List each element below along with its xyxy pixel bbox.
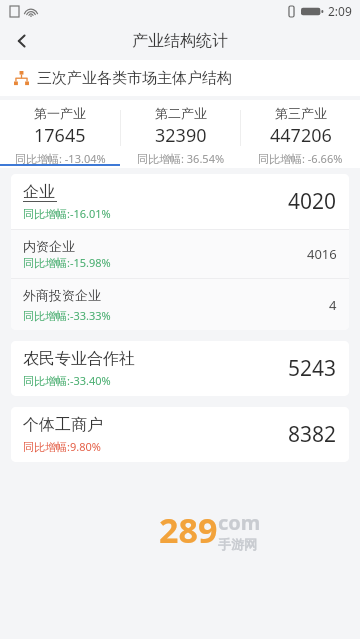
button[interactable]: Back (0, 22, 44, 60)
button[interactable]: 第三产业 (241, 100, 360, 166)
staticText: 4 (329, 296, 337, 314)
staticText: 5243 (288, 354, 337, 383)
staticText: 同比增幅:9.80% (23, 439, 101, 454)
staticText: 17645 (34, 123, 86, 148)
staticText: 4016 (307, 245, 337, 263)
button[interactable]: 个体工商户 (11, 407, 349, 462)
staticText: 32390 (155, 123, 207, 148)
staticText: com (218, 509, 261, 536)
staticText: 同比增幅:-16.01% (23, 206, 111, 221)
staticText: 第三产业 (275, 105, 327, 121)
staticText: 同比增幅: -6.66% (258, 151, 343, 166)
staticText: 内资企业 (23, 238, 75, 254)
staticText: 个体工商户 (23, 415, 103, 435)
button[interactable]: 第一产业 (0, 100, 120, 166)
staticText: 第二产业 (155, 105, 207, 121)
staticText: 447206 (270, 123, 332, 148)
staticText: 农民专业合作社 (23, 349, 135, 369)
staticText: 手游网 (218, 536, 257, 552)
button[interactable]: 农民专业合作社 (11, 341, 349, 396)
staticText: 同比增幅: 36.54% (137, 151, 225, 166)
button[interactable]: 内资企业 (11, 230, 349, 278)
staticText: 2:09 (328, 3, 352, 19)
staticText: 同比增幅:-15.98% (23, 255, 111, 270)
staticText: 同比增幅:-33.40% (23, 373, 111, 388)
staticText: 同比增幅:-33.33% (23, 308, 111, 323)
staticText: 外商投资企业 (23, 287, 101, 303)
staticText: 4020 (288, 187, 337, 216)
staticText: 产业结构统计 (132, 31, 228, 51)
button[interactable]: 第二产业 (121, 100, 240, 166)
staticText: 第一产业 (34, 105, 86, 121)
staticText: 同比增幅: -13.04% (15, 151, 106, 166)
staticText: 8382 (288, 420, 337, 449)
staticText: 289 (159, 507, 218, 553)
button[interactable]: 企业 (11, 174, 349, 229)
staticText: 三次产业各类市场主体户结构 (37, 69, 232, 88)
button[interactable]: 外商投资企业 (11, 279, 349, 330)
staticText: 企业 (23, 182, 55, 202)
